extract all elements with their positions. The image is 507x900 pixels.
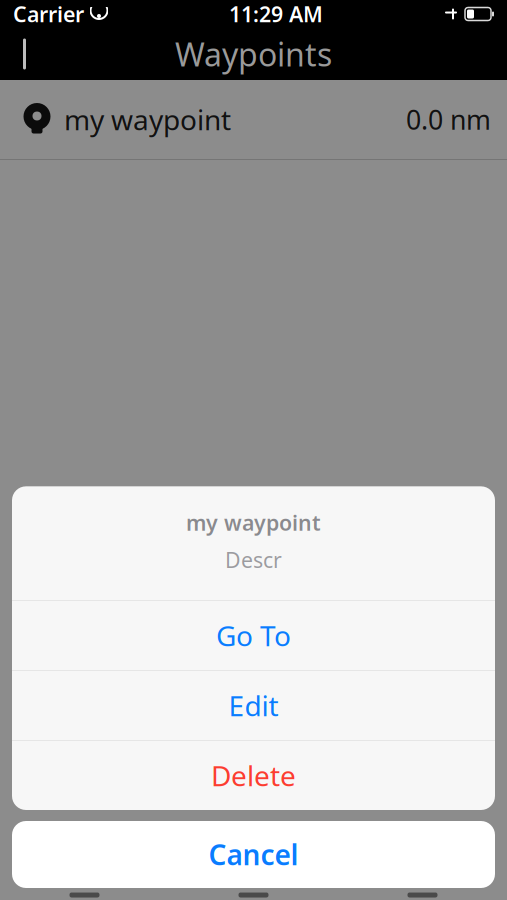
staticText: 0.0 nm — [406, 102, 491, 137]
staticText: Carrier — [13, 0, 84, 28]
staticText: 11:29 AM — [229, 0, 323, 28]
button[interactable]: Edit — [12, 671, 495, 740]
staticText: my waypoint — [186, 508, 321, 537]
button[interactable]: Back — [0, 28, 54, 80]
staticText: Descr — [225, 546, 282, 574]
staticText: my waypoint — [64, 101, 231, 138]
staticText: Go To — [216, 617, 291, 654]
button[interactable]: Cancel — [12, 821, 495, 888]
staticText: Waypoints — [175, 33, 332, 75]
button[interactable]: Delete — [12, 741, 495, 810]
staticText: Delete — [211, 757, 296, 794]
staticText: Cancel — [208, 836, 298, 873]
staticText: Edit — [228, 687, 278, 724]
button[interactable]: my waypoint — [0, 80, 507, 159]
button[interactable]: Go To — [12, 601, 495, 670]
